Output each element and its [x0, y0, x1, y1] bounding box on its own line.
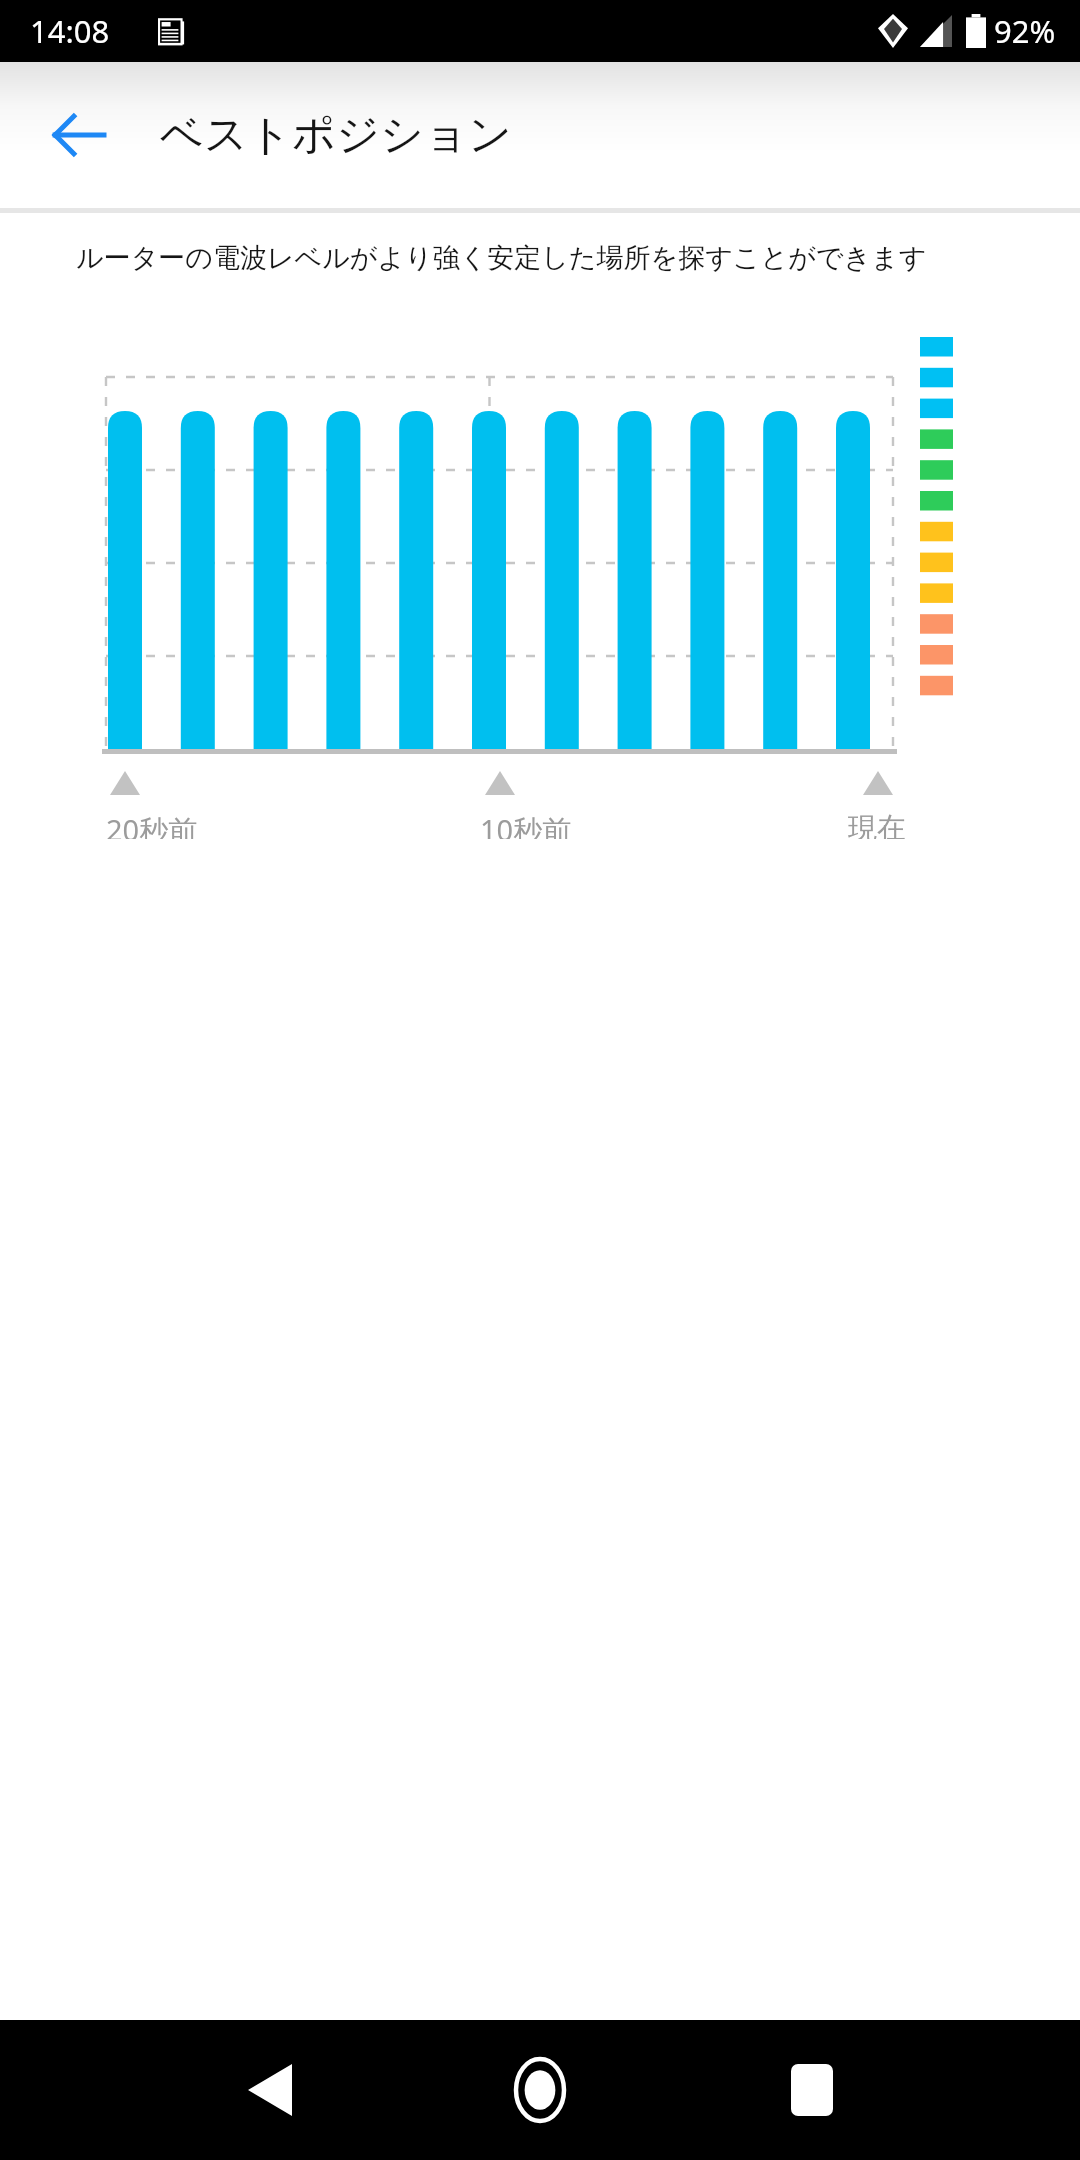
button[interactable]: Recent apps [752, 2030, 872, 2150]
button[interactable]: Home [480, 2030, 600, 2150]
staticText: 20秒前 [106, 810, 198, 839]
staticText: 14:08 [30, 10, 110, 52]
staticText: ルーターの電波レベルがより強く安定した場所を探すことができます [76, 241, 927, 275]
button[interactable]: Back [210, 2030, 330, 2150]
staticText: ベストポジション [160, 108, 513, 162]
staticText: 92% [994, 10, 1056, 52]
staticText: 10秒前 [480, 810, 572, 839]
staticText: 現在 [848, 810, 906, 839]
button[interactable]: Back [30, 87, 126, 183]
